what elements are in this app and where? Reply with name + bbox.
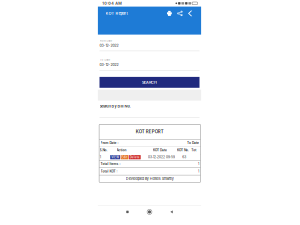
button[interactable]: Recent apps [121,205,134,218]
staticText: Delete [130,155,140,159]
staticText: SEARCH [142,80,157,85]
staticText: Total Items : [100,162,120,166]
button[interactable]: Share [175,7,185,20]
button[interactable]: SEARCH [99,77,199,88]
staticText: 03-12-2022 [99,43,118,48]
staticText: 1 [198,169,199,173]
staticText: Total KOT : [100,169,117,173]
staticText: 03-12-2022 09:59 [148,155,175,159]
staticText: Tot [191,148,196,152]
staticText: KOT REPORT [136,129,164,134]
staticText: Action [117,148,127,152]
staticText: S.No. [100,148,108,152]
staticText: KOT Date [153,148,167,152]
staticText: 10:04 AM [102,1,122,6]
staticText: KOT Report [106,11,128,16]
staticText: To Date [187,141,199,145]
staticText: 63 [182,155,186,159]
staticText: 03-12-2022 [99,62,118,67]
staticText: Developed By Hotels Smartly [126,176,174,181]
staticText: KOT No. [177,148,189,152]
button[interactable]: Back [165,205,178,218]
button[interactable]: Print [164,7,175,20]
staticText: To Date [99,58,110,61]
staticText: Search By Bill No. [99,104,130,108]
staticText: 1 [100,155,101,159]
button[interactable]: Delete [129,155,141,159]
button[interactable]: Back [185,7,196,20]
staticText: From Date [99,39,112,42]
button[interactable]: Edit [121,155,128,159]
staticText: From Date : [100,141,118,145]
staticText: VIEW [111,155,119,159]
button[interactable]: VIEW [110,155,120,159]
staticText: Edit [122,155,128,159]
button[interactable]: Home [143,205,156,218]
staticText: 1 [198,162,199,166]
